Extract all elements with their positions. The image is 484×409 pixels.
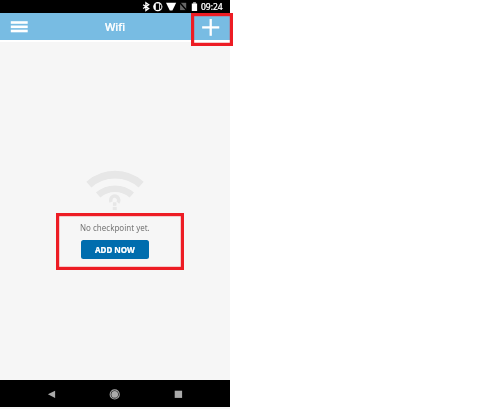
button[interactable]: Add — [192, 13, 230, 40]
staticText: Wifi — [105, 19, 126, 34]
button[interactable]: Open navigation drawer — [0, 13, 30, 40]
button[interactable]: Back — [37, 380, 66, 407]
button[interactable]: ADD NOW — [81, 240, 149, 259]
staticText: No checkpoint yet. — [80, 222, 150, 233]
staticText: 09:24 — [201, 1, 223, 13]
button[interactable]: Recent apps — [164, 380, 193, 407]
staticText: ADD NOW — [95, 244, 135, 255]
button[interactable]: Home — [100, 380, 129, 407]
